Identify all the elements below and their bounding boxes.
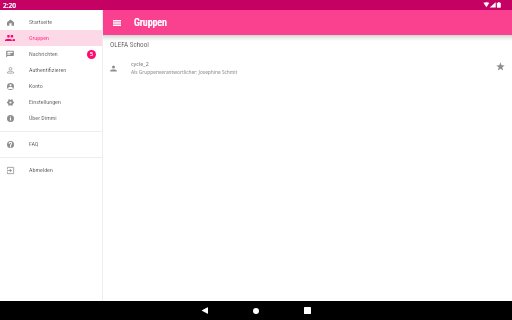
staticText: Über Dimmi <box>29 114 57 121</box>
button[interactable]: Favorite <box>493 61 507 75</box>
staticText: Startseite <box>29 18 53 25</box>
staticText: 2:20 <box>3 1 16 10</box>
button[interactable]: FAQ <box>0 136 103 152</box>
button[interactable]: cycle_2 <box>103 57 512 79</box>
staticText: Nachrichten <box>29 50 58 57</box>
staticText: Konto <box>29 82 43 89</box>
button[interactable]: Startseite <box>0 14 103 30</box>
staticText: Als Gruppenverantwortlicher: Josephine S… <box>131 69 238 76</box>
staticText: Einstellungen <box>29 98 61 105</box>
button[interactable]: Über Dimmi <box>0 110 103 126</box>
staticText: Authentifizieren <box>29 66 67 73</box>
staticText: Gruppen <box>29 34 49 41</box>
button[interactable]: Konto <box>0 78 103 94</box>
staticText: Abmelden <box>29 166 53 173</box>
staticText: Gruppen <box>134 17 167 29</box>
button[interactable]: Back <box>194 301 214 320</box>
staticText: cycle_2 <box>131 60 149 67</box>
button[interactable]: Open navigation menu <box>110 16 124 30</box>
staticText: FAQ <box>29 140 39 147</box>
button[interactable]: Einstellungen <box>0 94 103 110</box>
button[interactable]: Home <box>246 301 266 320</box>
button[interactable]: Nachrichten <box>0 46 103 62</box>
button[interactable]: Gruppen <box>0 30 103 46</box>
button[interactable]: Authentifizieren <box>0 62 103 78</box>
staticText: 5 <box>90 51 93 58</box>
button[interactable]: Recent apps <box>297 301 317 320</box>
staticText: OLEFA School <box>110 40 149 48</box>
button[interactable]: Abmelden <box>0 162 103 178</box>
